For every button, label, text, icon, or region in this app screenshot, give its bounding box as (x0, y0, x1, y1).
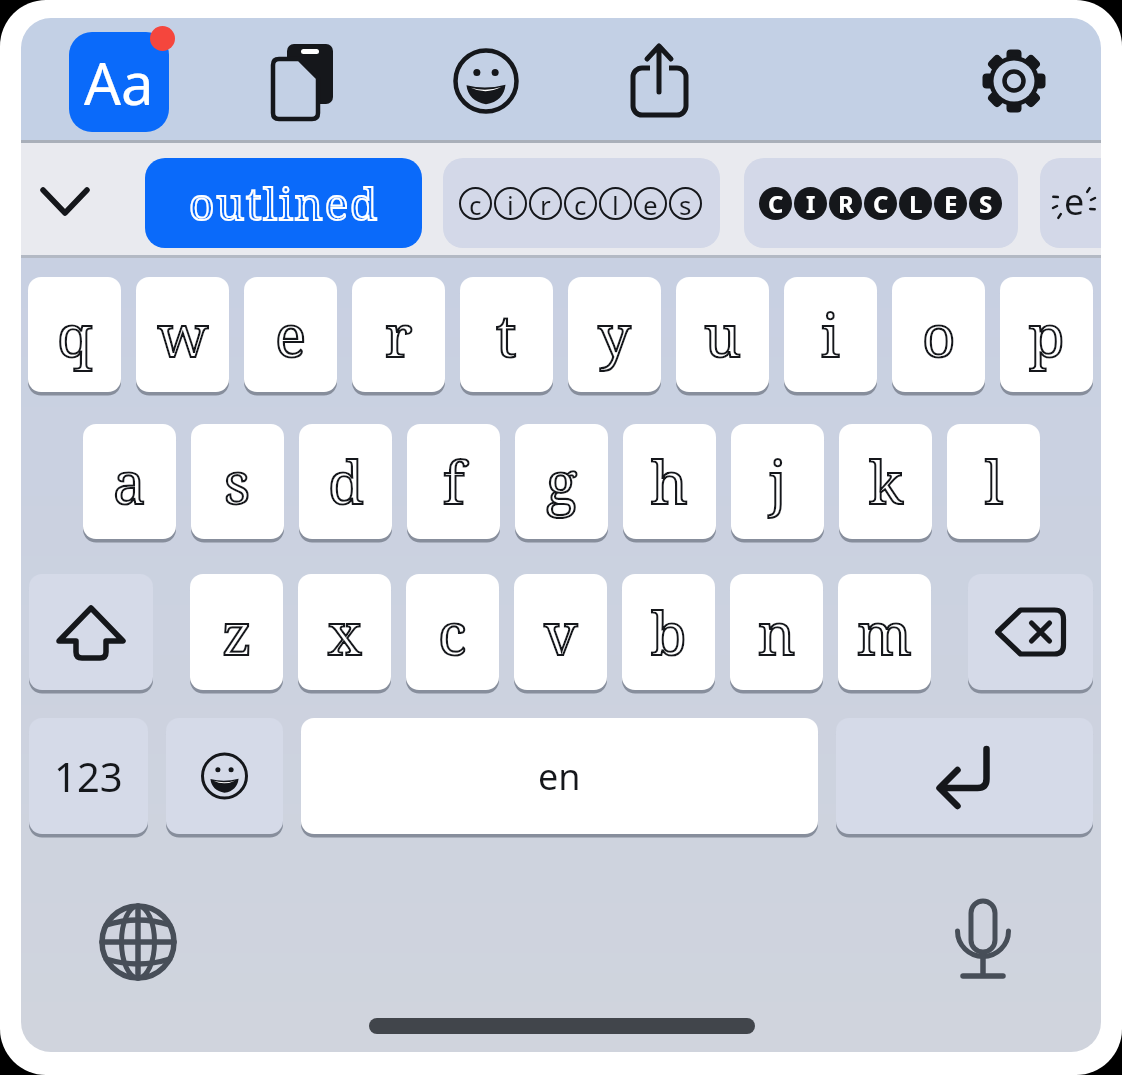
staticText: w (158, 295, 208, 374)
staticText: c (438, 593, 467, 672)
staticText: r (385, 295, 413, 374)
staticText: C (873, 187, 889, 220)
button[interactable]: e (244, 277, 337, 392)
button[interactable] (43, 178, 93, 228)
button[interactable] (836, 718, 1093, 834)
button[interactable]: g (515, 424, 608, 539)
staticText: i (507, 187, 514, 220)
button[interactable]: q (28, 277, 121, 392)
button[interactable] (91, 898, 186, 993)
staticText: s (224, 442, 251, 521)
staticText: I (806, 187, 816, 220)
button[interactable]: k (839, 424, 932, 539)
button[interactable]: outlined (145, 158, 422, 248)
staticText: Aa (84, 43, 154, 122)
button[interactable]: c (406, 574, 499, 690)
staticText: en (538, 752, 581, 801)
button[interactable]: en (301, 718, 818, 834)
staticText: outlined (189, 173, 379, 233)
staticText: S (979, 187, 993, 220)
staticText: k (869, 442, 903, 521)
staticText: l (985, 442, 1003, 521)
button[interactable] (628, 44, 692, 116)
staticText: p (1029, 295, 1065, 374)
staticText: l (612, 187, 619, 220)
button[interactable] (273, 44, 333, 119)
button[interactable]: l (947, 424, 1040, 539)
button[interactable] (983, 50, 1045, 112)
staticText: x (328, 593, 362, 672)
staticText: d (328, 442, 364, 521)
staticText: r (540, 187, 551, 220)
staticText: c (469, 187, 482, 220)
staticText: o (922, 295, 956, 374)
staticText: 123 (54, 749, 123, 803)
staticText: c (574, 187, 587, 220)
staticText: a (113, 442, 146, 521)
staticText: u (704, 295, 741, 374)
staticText: j (769, 442, 787, 521)
button[interactable]: t (460, 277, 553, 392)
button[interactable]: h (623, 424, 716, 539)
button[interactable]: r (352, 277, 445, 392)
button[interactable]: b (622, 574, 715, 690)
staticText: E (944, 187, 958, 220)
staticText: t (496, 295, 517, 374)
button[interactable]: d (299, 424, 392, 539)
staticText: e (1064, 177, 1085, 226)
button[interactable] (455, 50, 517, 112)
staticText: v (544, 593, 578, 672)
button[interactable]: i (784, 277, 877, 392)
button[interactable]: u (676, 277, 769, 392)
button[interactable]: a (83, 424, 176, 539)
staticText: b (651, 593, 687, 672)
button[interactable] (968, 574, 1093, 690)
button[interactable] (29, 574, 153, 690)
staticText: z (222, 593, 252, 672)
button[interactable]: 123 (29, 718, 148, 834)
staticText: e (275, 295, 307, 374)
button[interactable]: m (838, 574, 931, 690)
staticText: L (909, 187, 923, 220)
button[interactable]: p (1000, 277, 1093, 392)
button[interactable]: o (892, 277, 985, 392)
staticText: R (838, 187, 854, 220)
staticText: m (857, 593, 912, 672)
staticText: y (598, 295, 631, 374)
staticText: h (651, 442, 688, 521)
button[interactable]: C (744, 158, 1018, 248)
button[interactable] (936, 888, 1031, 983)
button[interactable]: x (298, 574, 391, 690)
button[interactable]: e (1040, 158, 1101, 248)
staticText: i (821, 295, 840, 374)
staticText: e (643, 187, 658, 220)
staticText: C (768, 187, 784, 220)
button[interactable] (166, 718, 283, 834)
button[interactable]: z (190, 574, 283, 690)
button[interactable]: y (568, 277, 661, 392)
staticText: f (443, 442, 465, 521)
button[interactable]: f (407, 424, 500, 539)
button[interactable]: n (730, 574, 823, 690)
staticText: s (679, 187, 692, 220)
button[interactable]: w (136, 277, 229, 392)
button[interactable]: j (731, 424, 824, 539)
button[interactable]: c (443, 158, 720, 248)
button[interactable]: v (514, 574, 607, 690)
button[interactable]: Aa (69, 32, 169, 132)
staticText: n (758, 593, 796, 672)
staticText: g (546, 442, 578, 521)
button[interactable]: s (191, 424, 284, 539)
staticText: q (57, 295, 93, 374)
